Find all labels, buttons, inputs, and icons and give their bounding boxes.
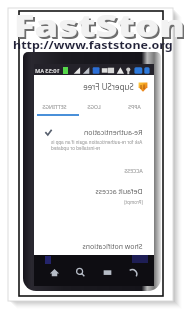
staticText: (Prompt) [124, 199, 143, 205]
staticText: Re-authentication [84, 128, 143, 138]
button[interactable]: SETTINGS [34, 98, 74, 116]
staticText: Show notifications [82, 242, 143, 252]
button[interactable]: Default access [34, 187, 143, 205]
button[interactable]: Show notifications [34, 242, 143, 252]
button[interactable]: Re-authentication [34, 116, 154, 158]
button[interactable]: APPS [114, 98, 154, 116]
staticText: SETTINGS [42, 103, 67, 110]
button[interactable]: Back [128, 267, 139, 278]
staticText: APPS [128, 103, 141, 110]
button[interactable]: Search [75, 267, 86, 278]
staticText: 10:53 AM [35, 67, 60, 75]
staticText: LOGS [87, 103, 101, 110]
staticText: FastStone [14, 5, 184, 46]
staticText: ACCESS [124, 167, 143, 174]
button[interactable]: LOGS [74, 98, 114, 116]
staticText: FastStone [16, 7, 184, 48]
staticText: Ask for re-authentication again if an ap… [51, 139, 143, 151]
button[interactable]: Home [49, 267, 60, 278]
button[interactable]: Recent apps [102, 267, 113, 278]
staticText: http://www.faststone.org [13, 38, 173, 52]
staticText: Default access [95, 187, 143, 197]
staticText: SuperSU Free [83, 81, 134, 92]
